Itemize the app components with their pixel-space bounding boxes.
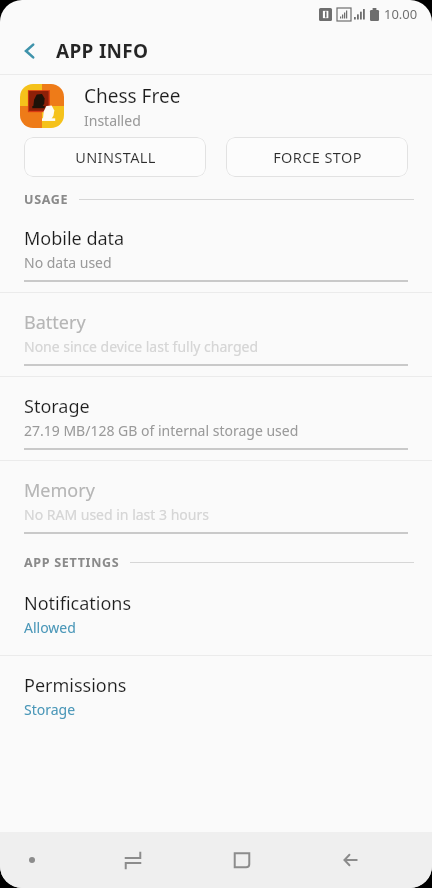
button[interactable]: Permissions bbox=[0, 665, 432, 727]
button[interactable]: Memory bbox=[0, 470, 432, 532]
staticText: USAGE bbox=[24, 191, 69, 208]
button[interactable]: Home bbox=[214, 832, 270, 888]
staticText: Storage bbox=[24, 700, 76, 719]
staticText: Battery bbox=[24, 310, 86, 335]
staticText: Permissions bbox=[24, 673, 127, 698]
staticText: Installed bbox=[84, 111, 141, 130]
staticText: No RAM used in last 3 hours bbox=[24, 505, 209, 524]
staticText: 10.00 bbox=[384, 5, 418, 23]
button[interactable]: FORCE STOP bbox=[226, 137, 408, 177]
staticText: No data used bbox=[24, 253, 112, 272]
staticText: Storage bbox=[24, 394, 90, 419]
staticText: FORCE STOP bbox=[273, 147, 362, 167]
staticText: Notifications bbox=[24, 591, 132, 616]
button[interactable]: Storage bbox=[0, 386, 432, 448]
staticText: Allowed bbox=[24, 618, 76, 637]
staticText: 27.19 MB/128 GB of internal storage used bbox=[24, 421, 299, 440]
button[interactable]: UNINSTALL bbox=[24, 137, 206, 177]
staticText: Chess Free bbox=[84, 83, 181, 109]
staticText: APP INFO bbox=[56, 38, 149, 64]
button[interactable]: Back bbox=[323, 832, 379, 888]
staticText: UNINSTALL bbox=[75, 147, 156, 167]
button[interactable]: Back bbox=[10, 31, 50, 71]
staticText: Mobile data bbox=[24, 226, 125, 251]
button[interactable]: Indicator bbox=[20, 848, 44, 872]
staticText: None since device last fully charged bbox=[24, 337, 259, 356]
staticText: APP SETTINGS bbox=[24, 554, 120, 571]
button[interactable]: Recents bbox=[105, 832, 161, 888]
button[interactable]: Notifications bbox=[0, 583, 432, 645]
button[interactable]: Battery bbox=[0, 302, 432, 364]
staticText: Memory bbox=[24, 478, 95, 503]
button[interactable]: Mobile data bbox=[0, 218, 432, 280]
